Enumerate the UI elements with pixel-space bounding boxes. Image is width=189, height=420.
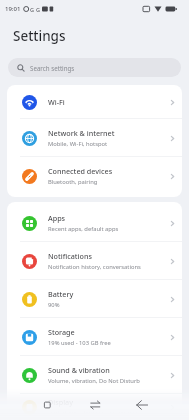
staticText: G (30, 6, 34, 13)
staticText: Notification history, conversations (48, 263, 141, 271)
staticText: Sound & vibration (48, 365, 110, 375)
staticText: Apps (48, 213, 66, 223)
button[interactable]: Wi-Fi (7, 85, 182, 119)
button[interactable] (0, 388, 63, 420)
staticText: Connected devices (48, 166, 113, 176)
staticText: Mobile, Wi-Fi, hotspot (48, 140, 108, 148)
staticText: Bluetooth, pairing (48, 178, 98, 186)
button[interactable]: Sound & vibration (7, 356, 182, 394)
button[interactable] (126, 388, 189, 420)
staticText: G (36, 6, 40, 13)
staticText: 90% (48, 301, 60, 309)
staticText: Display (48, 397, 73, 407)
staticText: Settings (13, 27, 66, 45)
button[interactable]: Connected devices (7, 157, 182, 195)
button[interactable]: Apps (7, 204, 182, 242)
staticText: 19:01 (5, 5, 21, 13)
button[interactable] (63, 388, 126, 420)
staticText: Storage (48, 327, 75, 337)
staticText: Wi-Fi (48, 97, 65, 107)
staticText: Network & internet (48, 128, 115, 138)
button[interactable]: Storage (7, 318, 182, 356)
staticText: Volume, vibration, Do Not Disturb (48, 377, 140, 385)
staticText: Notifications (48, 251, 92, 261)
button[interactable]: Network & internet (7, 119, 182, 157)
button[interactable]: Search settings (8, 58, 181, 77)
staticText: Battery (48, 289, 74, 299)
staticText: Recent apps, default apps (48, 225, 119, 233)
button[interactable]: Notifications (7, 242, 182, 280)
button[interactable]: Battery (7, 280, 182, 318)
button[interactable]: Display (7, 394, 182, 420)
staticText: Search settings (30, 64, 75, 72)
staticText: 19% used - 103 GB free (48, 339, 111, 347)
